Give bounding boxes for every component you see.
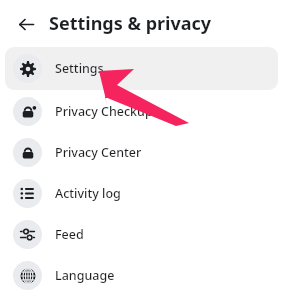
staticText: Language <box>55 267 115 284</box>
staticText: Settings <box>55 60 104 77</box>
button[interactable]: Language <box>0 255 283 296</box>
staticText: Settings & privacy <box>49 11 212 36</box>
staticText: Activity log <box>55 185 121 202</box>
button[interactable]: Privacy Checkup <box>0 91 283 132</box>
staticText: Privacy Checkup <box>55 103 153 120</box>
button[interactable]: Feed <box>0 214 283 255</box>
button[interactable]: Back <box>10 8 42 40</box>
button[interactable]: Settings <box>5 47 278 90</box>
button[interactable]: Privacy Center <box>0 132 283 173</box>
staticText: Privacy Center <box>55 144 142 161</box>
button[interactable]: Activity log <box>0 173 283 214</box>
staticText: Feed <box>55 226 84 243</box>
